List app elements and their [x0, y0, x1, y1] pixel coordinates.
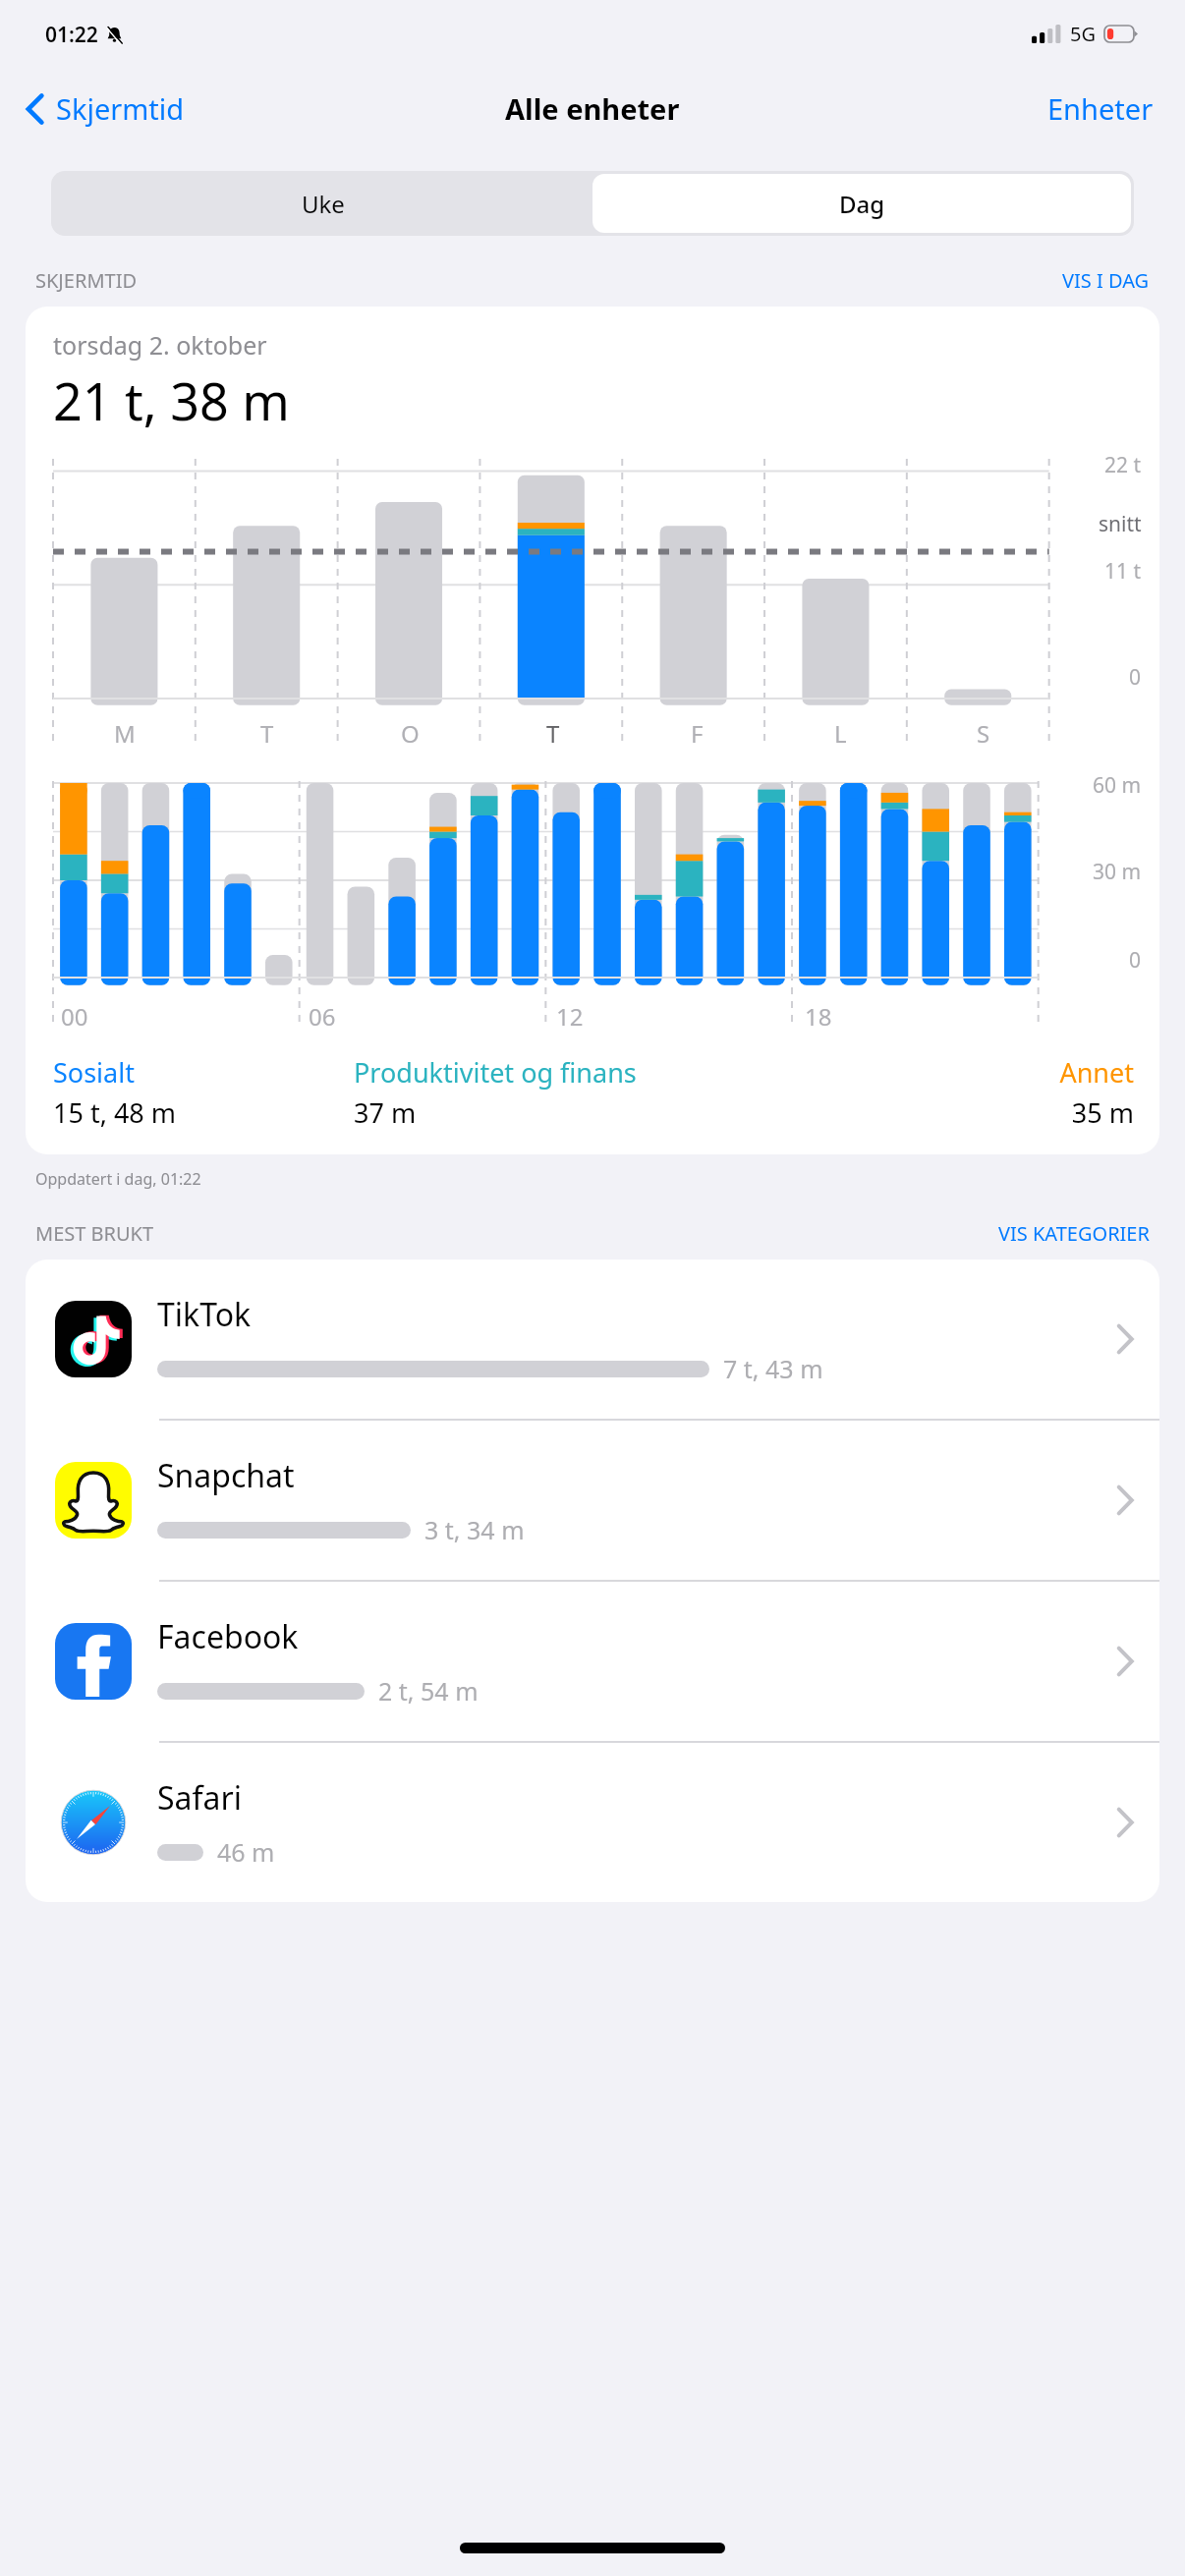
staticText: Dag — [839, 188, 885, 220]
staticText: 12 — [556, 1000, 584, 1033]
button[interactable]: VIS KATEGORIER — [994, 1216, 1154, 1251]
staticText: 35 m — [898, 1094, 1134, 1131]
staticText: T — [546, 717, 560, 750]
staticText: Safari — [157, 1776, 242, 1820]
staticText: 5G — [1070, 21, 1096, 47]
staticText: Oppdatert i dag, 01:22 — [35, 1168, 201, 1190]
staticText: 30 m — [1093, 858, 1142, 886]
staticText: Facebook — [157, 1615, 299, 1658]
staticText: torsdag 2. oktober — [53, 328, 267, 362]
staticText: L — [834, 717, 847, 750]
staticText: Produktivitet og finans — [354, 1054, 898, 1091]
staticText: 0 — [1129, 663, 1142, 692]
staticText: 37 m — [354, 1094, 898, 1131]
staticText: 15 t, 48 m — [53, 1094, 354, 1131]
staticText: 18 — [805, 1000, 832, 1033]
other: Vis detaljer for TikTok — [1116, 1323, 1134, 1355]
other: Vis detaljer for Snapchat — [1116, 1484, 1134, 1516]
staticText: Uke — [302, 188, 345, 220]
staticText: 22 t — [1104, 451, 1142, 479]
staticText: M — [114, 717, 136, 750]
button[interactable]: Dag — [592, 174, 1131, 233]
staticText: O — [401, 717, 420, 750]
staticText: 11 t — [1104, 557, 1142, 586]
button[interactable]: Snapchat — [26, 1421, 1159, 1580]
staticText: Annet — [898, 1054, 1134, 1091]
staticText: 2 t, 54 m — [378, 1674, 479, 1708]
staticText: S — [977, 717, 990, 750]
button[interactable]: torsdag 2. oktober — [26, 307, 1159, 1154]
button[interactable]: Safari — [26, 1743, 1159, 1902]
staticText: MEST BRUKT — [35, 1220, 154, 1247]
button[interactable]: Skjermtid — [16, 82, 195, 136]
staticText: Snapchat — [157, 1454, 295, 1497]
other: Vis detaljer for Safari — [1116, 1807, 1134, 1838]
button[interactable]: Enheter — [1040, 82, 1161, 136]
staticText: 0 — [1129, 946, 1142, 975]
staticText: 01:22 — [45, 21, 98, 49]
staticText: 3 t, 34 m — [424, 1513, 525, 1546]
staticText: TikTok — [157, 1293, 252, 1336]
button[interactable]: TikTok — [26, 1260, 1159, 1419]
button[interactable]: Facebook — [26, 1582, 1159, 1741]
staticText: snitt — [1099, 510, 1142, 538]
other: Vis detaljer for Facebook — [1116, 1646, 1134, 1677]
staticText: Skjermtid — [56, 89, 185, 128]
staticText: 06 — [309, 1000, 336, 1033]
staticText: Sosialt — [53, 1054, 354, 1091]
staticText: 7 t, 43 m — [723, 1352, 823, 1385]
staticText: 60 m — [1093, 771, 1142, 800]
staticText: 00 — [61, 1000, 88, 1033]
staticText: Alle enheter — [505, 89, 680, 128]
button[interactable]: Uke — [54, 174, 592, 233]
staticText: 21 t, 38 m — [53, 365, 290, 435]
staticText: SKJERMTID — [35, 267, 138, 294]
button[interactable]: VIS I DAG — [1058, 263, 1154, 298]
staticText: F — [691, 717, 704, 750]
staticText: T — [260, 717, 274, 750]
staticText: 46 m — [217, 1835, 275, 1869]
